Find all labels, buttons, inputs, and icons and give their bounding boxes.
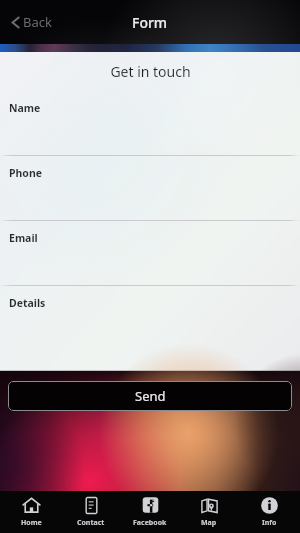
button[interactable]: Details [0, 286, 300, 362]
staticText: Email [9, 231, 38, 245]
staticText: Send [135, 387, 166, 405]
staticText: Map [201, 518, 217, 528]
staticText: Back [23, 13, 52, 31]
staticText: Facebook [133, 518, 167, 528]
staticText: Home [21, 518, 42, 528]
staticText: Form [132, 13, 168, 32]
staticText: Contact [77, 518, 105, 528]
staticText: Phone [9, 166, 43, 180]
button[interactable]: Phone [0, 156, 300, 220]
button[interactable]: Name [0, 91, 300, 155]
button[interactable]: Email [0, 221, 300, 285]
staticText: Name [9, 101, 41, 115]
button[interactable]: Map [181, 491, 237, 533]
button[interactable]: Info [241, 491, 297, 533]
button[interactable]: Send [8, 381, 292, 411]
staticText: Get in touch [110, 62, 191, 81]
button[interactable]: Home [3, 491, 59, 533]
staticText: Info [262, 518, 277, 528]
button[interactable]: Facebook [122, 491, 178, 533]
staticText: Details [9, 296, 46, 310]
button[interactable]: Back [8, 9, 56, 35]
button[interactable]: Contact [63, 491, 119, 533]
